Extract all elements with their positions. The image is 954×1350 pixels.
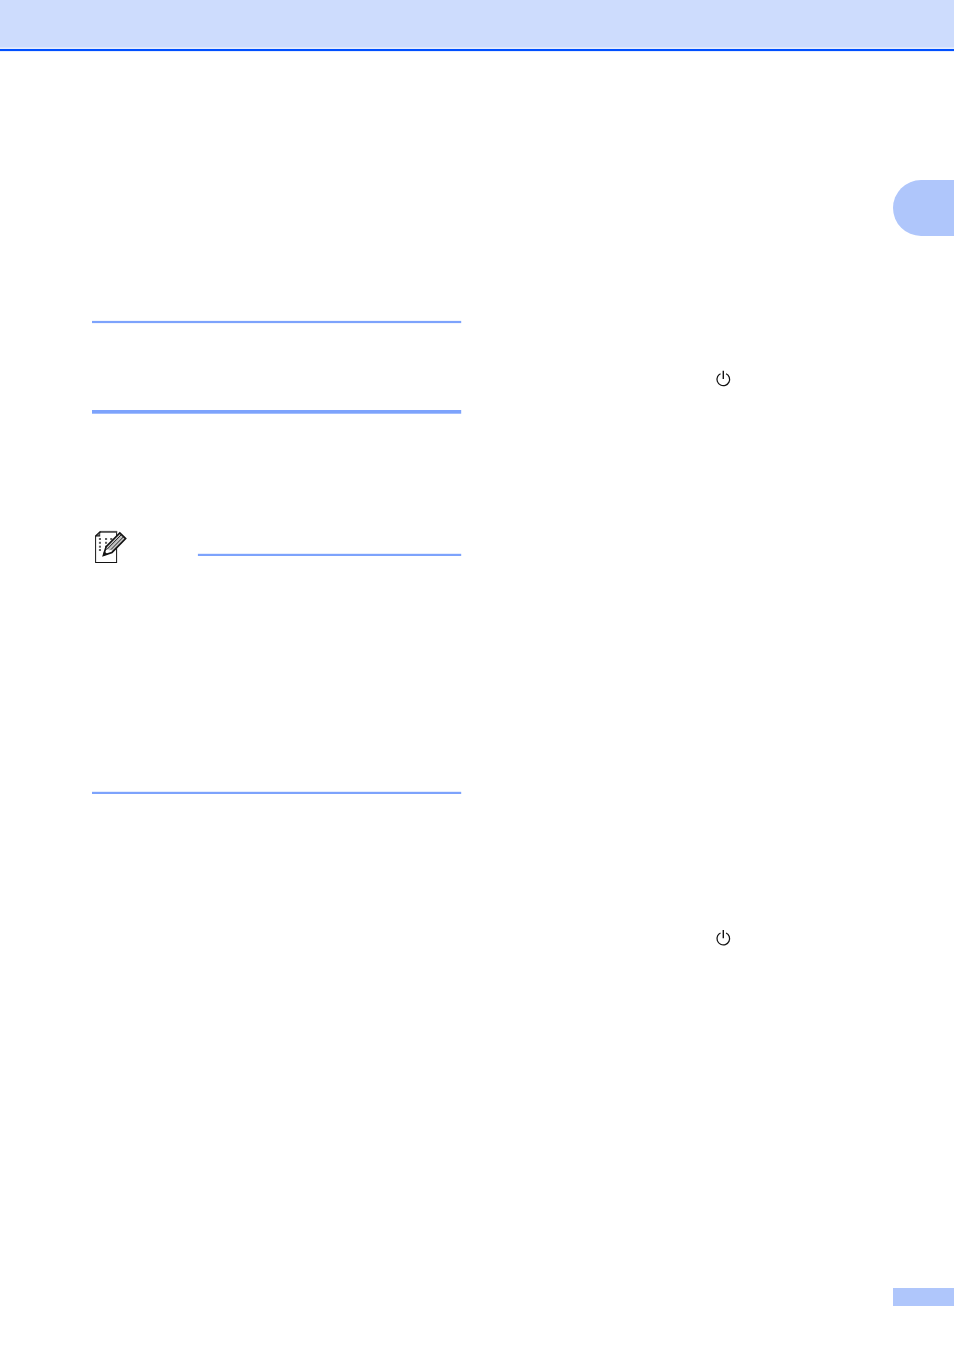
button[interactable]: Power — [713, 369, 734, 390]
button[interactable]: Power — [713, 928, 734, 949]
button[interactable]: Note — [92, 528, 124, 566]
button[interactable]: Chapter tab — [893, 180, 954, 236]
